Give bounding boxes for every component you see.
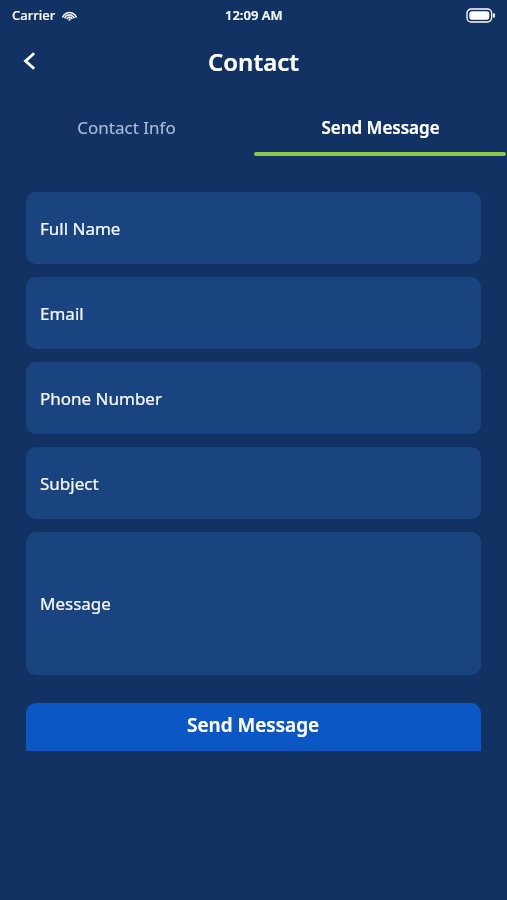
button[interactable]: Back [8, 39, 52, 83]
staticText: Contact [208, 45, 300, 78]
button[interactable]: Subject [26, 447, 481, 519]
button[interactable]: Email [26, 277, 481, 349]
button[interactable]: Phone Number [26, 362, 481, 434]
staticText: Full Name [40, 217, 121, 240]
button[interactable]: Send Message [253, 92, 507, 160]
button[interactable]: Message [26, 532, 481, 675]
button[interactable]: Full Name [26, 192, 481, 264]
staticText: 12:09 AM [225, 6, 283, 24]
button[interactable]: Send Message [26, 703, 481, 751]
staticText: Carrier [12, 6, 56, 24]
staticText: Subject [40, 472, 99, 495]
button[interactable]: Contact Info [0, 92, 253, 160]
staticText: Email [40, 302, 84, 325]
staticText: Send Message [187, 712, 320, 738]
staticText: Message [40, 592, 111, 615]
staticText: Contact Info [77, 116, 176, 139]
staticText: Send Message [321, 116, 440, 139]
staticText: Phone Number [40, 387, 162, 410]
